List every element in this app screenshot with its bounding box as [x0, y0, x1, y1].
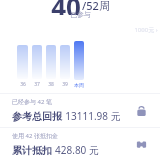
staticText: 13111.98 元: [65, 109, 121, 123]
staticText: 已经参与 42 笔: [12, 98, 52, 106]
staticText: 参考总回报: [12, 110, 62, 123]
staticText: /52周: [82, 0, 110, 13]
staticText: 累计抵扣: [12, 144, 52, 157]
button[interactable]: 36: [0, 36, 160, 88]
button[interactable]: 37: [32, 45, 42, 88]
button[interactable]: 38: [46, 45, 56, 88]
staticText: 39: [62, 81, 68, 88]
button[interactable]: 本周: [74, 41, 84, 88]
staticText: 37: [34, 81, 40, 88]
button[interactable]: Total return: [132, 102, 150, 120]
button[interactable]: Coupons used: [132, 135, 150, 153]
staticText: 36: [20, 81, 26, 88]
staticText: 1000元 ›: [134, 26, 158, 34]
staticText: 428.80 元: [55, 143, 99, 157]
button[interactable]: 已经参与 42 笔: [0, 94, 160, 127]
button[interactable]: 39: [60, 45, 70, 88]
staticText: 使用 42 张抵扣金: [12, 132, 58, 140]
button[interactable]: 使用 42 张抵扣金: [0, 128, 160, 160]
staticText: 已参与: [70, 10, 91, 19]
button[interactable]: 40: [0, 0, 160, 26]
staticText: 本周: [74, 82, 84, 88]
button[interactable]: 36: [17, 45, 28, 88]
staticText: 40: [51, 0, 81, 15]
staticText: 38: [48, 81, 54, 88]
